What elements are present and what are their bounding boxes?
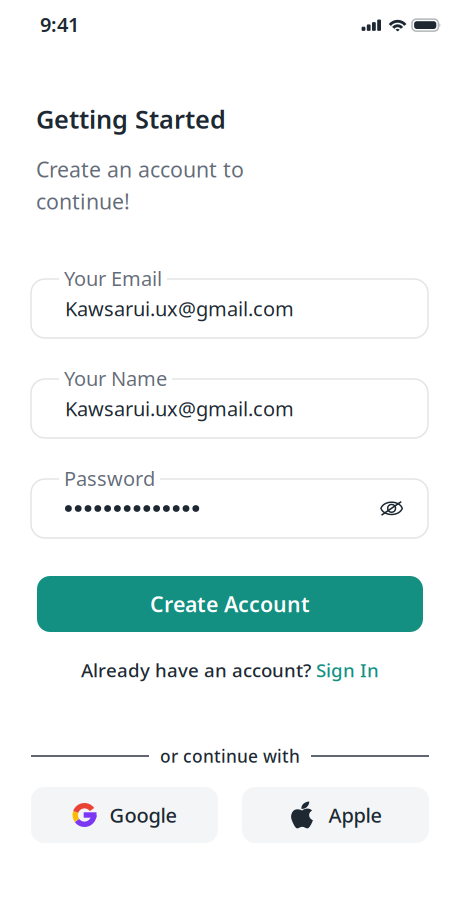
staticText: Your Email <box>64 265 162 292</box>
staticText: Create an account to <box>36 155 244 183</box>
staticText: Apple <box>328 802 381 828</box>
staticText: Google <box>109 802 176 828</box>
staticText: Your Name <box>64 365 167 392</box>
staticText: Already have an account? <box>81 658 316 682</box>
staticText: continue! <box>36 187 130 215</box>
staticText: Create Account <box>150 590 310 618</box>
staticText: Kawsarui.ux@gmail.com <box>65 395 294 422</box>
staticText: Password <box>64 465 155 492</box>
button[interactable]: Google <box>31 787 218 843</box>
button[interactable]: Create Account <box>37 576 423 632</box>
button[interactable]: Apple <box>242 787 429 843</box>
button[interactable]: Already have an account? <box>31 658 429 682</box>
staticText: Getting Started <box>36 102 226 136</box>
staticText: or continue with <box>160 744 300 767</box>
staticText: Kawsarui.ux@gmail.com <box>65 295 294 322</box>
staticText: Sign In <box>316 658 379 682</box>
staticText: 9:41 <box>40 11 79 38</box>
button[interactable]: Show password <box>380 501 403 516</box>
